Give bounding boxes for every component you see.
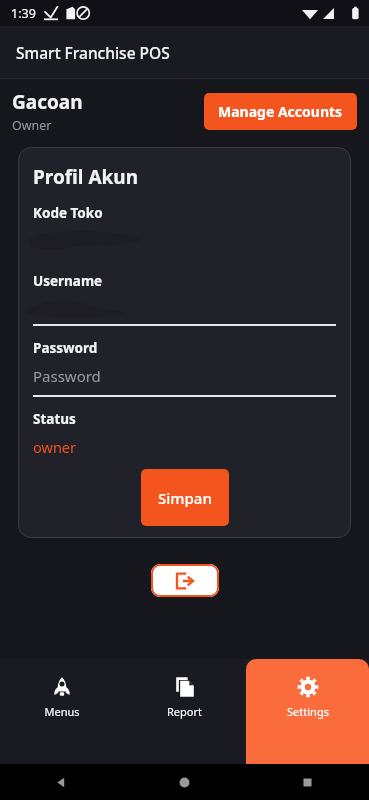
staticText: Gacoan bbox=[12, 89, 83, 115]
staticText: Password bbox=[33, 366, 101, 386]
other: Back bbox=[54, 775, 69, 790]
staticText: Kode Toko bbox=[33, 204, 103, 222]
staticText: Smart Franchise POS bbox=[16, 42, 170, 63]
button[interactable]: Manage Accounts bbox=[204, 93, 357, 130]
staticText: Password bbox=[33, 339, 98, 357]
staticText: Owner bbox=[12, 117, 52, 134]
staticText: Simpan bbox=[158, 488, 212, 508]
other: Home bbox=[177, 775, 192, 790]
staticText: Status bbox=[33, 410, 76, 428]
staticText: Profil Akun bbox=[33, 164, 139, 190]
staticText: Manage Accounts bbox=[218, 102, 343, 121]
button[interactable]: Menus bbox=[0, 659, 123, 764]
staticText: Username bbox=[33, 272, 103, 290]
button[interactable]: Logout bbox=[151, 564, 219, 597]
other: Recents bbox=[300, 775, 315, 790]
staticText: owner bbox=[33, 437, 77, 457]
staticText: Menus bbox=[44, 704, 80, 719]
button[interactable]: Report bbox=[123, 659, 246, 764]
staticText: Settings bbox=[287, 704, 329, 719]
button[interactable]: Settings bbox=[246, 659, 369, 764]
staticText: Report bbox=[167, 704, 202, 719]
staticText: 1:39 bbox=[11, 5, 36, 22]
button[interactable]: Simpan bbox=[141, 469, 229, 526]
